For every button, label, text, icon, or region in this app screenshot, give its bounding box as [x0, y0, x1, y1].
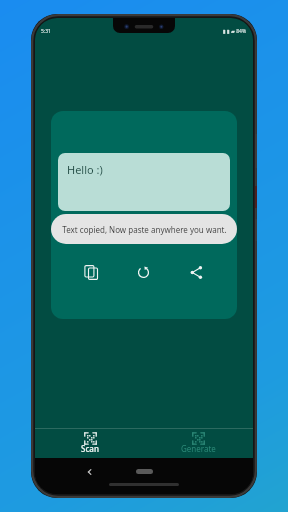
staticText: 5:31 [41, 28, 51, 35]
staticText: Scan [81, 443, 99, 454]
button[interactable]: Share [170, 255, 223, 289]
button[interactable]: Copy [65, 255, 117, 289]
button[interactable]: Hello :) [58, 153, 230, 211]
staticText: ▮ ▮ ▰ 84% [223, 28, 247, 35]
staticText: Generate [181, 443, 216, 454]
staticText: Hello :) [67, 162, 103, 177]
button[interactable]: Refresh [117, 255, 170, 289]
button[interactable]: Scan [35, 429, 144, 458]
button[interactable]: Generate [144, 429, 253, 458]
other: Back [85, 468, 93, 476]
staticText: Text copied, Now paste anywhere you want… [62, 224, 227, 235]
